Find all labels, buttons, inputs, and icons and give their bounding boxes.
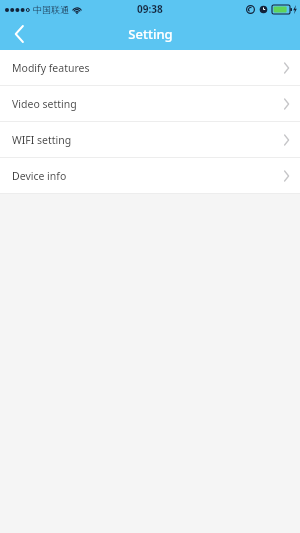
button[interactable]: WIFI setting (0, 122, 300, 157)
button[interactable]: Back (0, 18, 38, 50)
staticText: WIFI setting (12, 133, 72, 147)
button[interactable]: Video setting (0, 86, 300, 121)
staticText: Video setting (12, 97, 77, 111)
staticText: 中国联通 (33, 4, 69, 15)
button[interactable]: Device info (0, 158, 300, 193)
staticText: Device info (12, 169, 67, 183)
staticText: Modify features (12, 61, 90, 75)
staticText: 09:38 (137, 2, 163, 16)
button[interactable]: Modify features (0, 50, 300, 85)
staticText: Setting (128, 25, 173, 43)
